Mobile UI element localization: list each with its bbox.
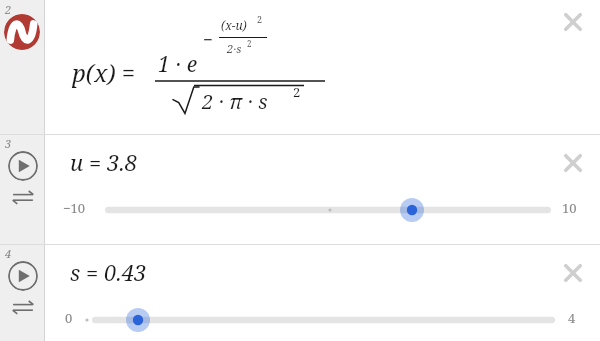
button[interactable]: Play animation	[8, 261, 38, 291]
staticText: 0	[65, 309, 73, 327]
staticText: s = 0.43	[70, 257, 147, 287]
staticText: 2	[247, 38, 252, 49]
staticText: (x−u)	[221, 17, 247, 33]
staticText: 10	[562, 199, 577, 217]
staticText: u = 3.8	[70, 147, 138, 177]
button[interactable]: Play animation	[8, 151, 38, 181]
staticText: 4	[5, 246, 12, 261]
staticText: 2	[293, 83, 301, 101]
staticText: −	[203, 28, 213, 51]
staticText: 1 · e	[158, 50, 198, 79]
staticText: 4	[568, 309, 576, 327]
button[interactable]: Graph visibility toggle	[4, 14, 40, 50]
button[interactable]: Close row	[556, 5, 590, 39]
button[interactable]: Toggle slider direction	[10, 297, 36, 317]
staticText: 2·s	[227, 41, 242, 56]
staticText: 3	[5, 136, 12, 151]
staticText: 2	[5, 2, 12, 17]
button[interactable]: Close row	[556, 256, 590, 290]
button[interactable]: Toggle slider direction	[10, 187, 36, 207]
staticText: p(x) =	[72, 56, 136, 89]
staticText: 2	[257, 13, 263, 25]
staticText: −10	[63, 199, 86, 217]
button[interactable]: Close row	[556, 146, 590, 180]
staticText: 2 · π · s	[202, 88, 268, 115]
